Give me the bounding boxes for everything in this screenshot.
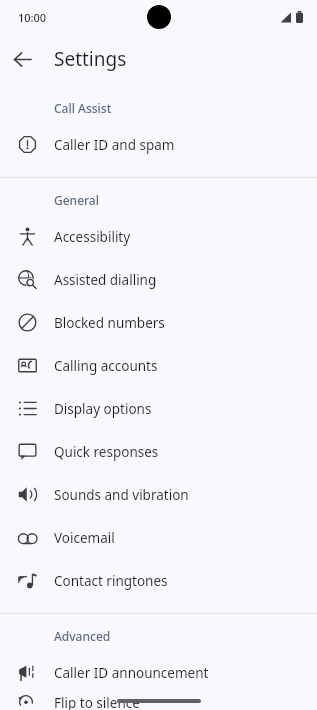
button[interactable]: Quick responses [0, 430, 317, 473]
staticText: Call Assist [54, 100, 112, 116]
staticText: Assisted dialling [54, 271, 157, 289]
staticText: Blocked numbers [54, 314, 165, 332]
staticText: Contact ringtones [54, 572, 168, 590]
staticText: Caller ID announcement [54, 664, 209, 682]
staticText: Display options [54, 400, 152, 418]
button[interactable]: Display options [0, 387, 317, 430]
staticText: Quick responses [54, 443, 159, 461]
staticText: Calling accounts [54, 357, 158, 375]
staticText: Settings [54, 46, 127, 72]
staticText: General [54, 192, 99, 208]
button[interactable]: Caller ID and spam [0, 123, 317, 166]
staticText: Accessibility [54, 228, 131, 246]
button[interactable]: Sounds and vibration [0, 473, 317, 516]
button[interactable]: Back [6, 43, 39, 76]
button[interactable]: Flip to silence [0, 694, 317, 710]
staticText: 10:00 [18, 10, 47, 25]
staticText: Voicemail [54, 529, 115, 547]
button[interactable]: Blocked numbers [0, 301, 317, 344]
staticText: Caller ID and spam [54, 136, 175, 154]
button[interactable]: Voicemail [0, 516, 317, 559]
button[interactable]: Caller ID announcement [0, 651, 317, 694]
button[interactable]: Contact ringtones [0, 559, 317, 602]
button[interactable]: Assisted dialling [0, 258, 317, 301]
staticText: Sounds and vibration [54, 486, 189, 504]
staticText: Advanced [54, 628, 111, 644]
staticText: Flip to silence [54, 694, 140, 710]
button[interactable]: Calling accounts [0, 344, 317, 387]
button[interactable]: Accessibility [0, 215, 317, 258]
